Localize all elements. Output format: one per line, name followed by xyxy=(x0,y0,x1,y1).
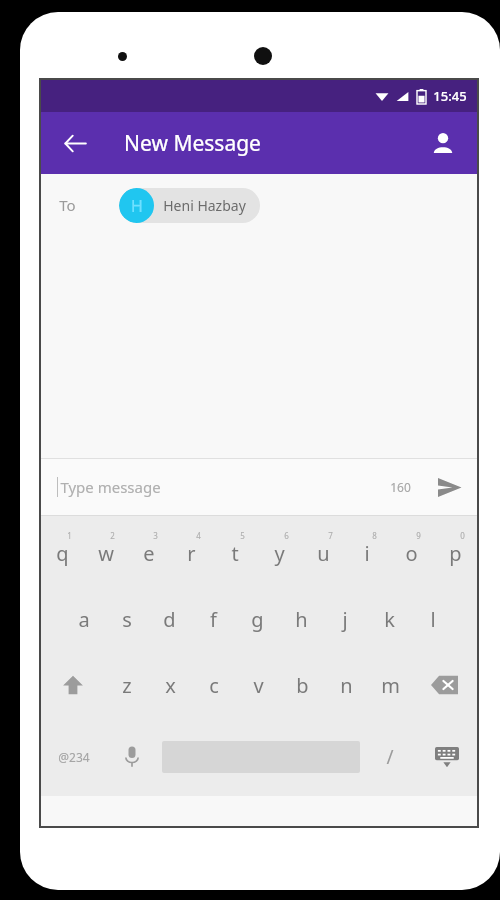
button[interactable]: z xyxy=(105,652,148,718)
button[interactable]: Shift xyxy=(41,652,105,718)
button[interactable]: 0 xyxy=(433,516,477,586)
button[interactable]: @234 xyxy=(41,718,106,796)
button[interactable]: x xyxy=(148,652,192,718)
staticText: 8 xyxy=(372,530,377,541)
staticText: 1 xyxy=(67,530,72,541)
button[interactable]: h xyxy=(279,586,323,652)
staticText: j xyxy=(342,606,348,633)
button[interactable]: s xyxy=(105,586,148,652)
staticText: q xyxy=(56,540,69,567)
staticText: Type message xyxy=(60,477,161,497)
button[interactable]: Voice input xyxy=(106,718,158,796)
button[interactable]: Send xyxy=(429,467,469,507)
staticText: f xyxy=(210,606,217,633)
button[interactable]: 3 xyxy=(127,516,170,586)
staticText: 6 xyxy=(284,530,289,541)
staticText: a xyxy=(78,606,90,633)
button[interactable]: m xyxy=(368,652,412,718)
staticText: z xyxy=(122,672,132,699)
staticText: @234 xyxy=(58,749,90,765)
staticText: / xyxy=(386,744,394,770)
staticText: 15:45 xyxy=(433,87,467,105)
button[interactable]: l xyxy=(411,586,455,652)
staticText: u xyxy=(317,540,330,567)
button[interactable]: 7 xyxy=(301,516,345,586)
staticText: l xyxy=(430,606,436,633)
button[interactable]: 8 xyxy=(345,516,389,586)
staticText: 0 xyxy=(460,530,465,541)
staticText: k xyxy=(384,606,395,633)
staticText: y xyxy=(274,540,285,567)
staticText: b xyxy=(296,672,309,699)
staticText: x xyxy=(165,672,176,699)
staticText: 3 xyxy=(153,530,158,541)
staticText: n xyxy=(340,672,353,699)
button[interactable]: n xyxy=(324,652,368,718)
button[interactable]: Hide keyboard xyxy=(416,718,477,796)
staticText: h xyxy=(295,606,308,633)
staticText: New Message xyxy=(124,129,261,158)
staticText: w xyxy=(98,540,114,567)
staticText: To xyxy=(59,195,76,215)
staticText: c xyxy=(209,672,219,699)
button[interactable]: f xyxy=(191,586,235,652)
staticText: p xyxy=(449,540,462,567)
button[interactable]: k xyxy=(367,586,411,652)
button[interactable]: g xyxy=(235,586,279,652)
staticText: m xyxy=(381,672,400,699)
button[interactable]: Add contact xyxy=(421,121,465,165)
staticText: 7 xyxy=(328,530,333,541)
button[interactable]: Type message xyxy=(60,459,390,515)
button[interactable]: 5 xyxy=(213,516,257,586)
button[interactable]: 6 xyxy=(257,516,301,586)
button[interactable]: 1 xyxy=(41,516,84,586)
button[interactable]: v xyxy=(236,652,280,718)
staticText: H xyxy=(131,195,143,217)
staticText: Heni Hazbay xyxy=(163,196,246,215)
staticText: 160 xyxy=(390,479,411,495)
staticText: 5 xyxy=(240,530,245,541)
button[interactable]: 4 xyxy=(170,516,213,586)
button[interactable]: c xyxy=(192,652,236,718)
button[interactable]: To xyxy=(41,174,477,236)
staticText: i xyxy=(364,540,370,567)
staticText: r xyxy=(187,540,196,567)
button[interactable]: j xyxy=(323,586,367,652)
staticText: g xyxy=(251,606,264,633)
staticText: e xyxy=(143,540,155,567)
button[interactable]: 9 xyxy=(389,516,433,586)
staticText: 2 xyxy=(110,530,115,541)
button[interactable]: / xyxy=(364,718,416,796)
staticText: o xyxy=(405,540,418,567)
staticText: 9 xyxy=(416,530,421,541)
button[interactable]: Back xyxy=(53,121,97,165)
button[interactable]: Backspace xyxy=(412,652,477,718)
button[interactable]: a xyxy=(62,586,105,652)
button[interactable]: d xyxy=(148,586,191,652)
staticText: s xyxy=(122,606,132,633)
staticText: 4 xyxy=(196,530,201,541)
staticText: d xyxy=(163,606,176,633)
staticText: t xyxy=(231,540,239,567)
button[interactable]: H xyxy=(119,188,260,223)
button[interactable]: 2 xyxy=(84,516,127,586)
staticText: v xyxy=(253,672,264,699)
button[interactable]: b xyxy=(280,652,324,718)
